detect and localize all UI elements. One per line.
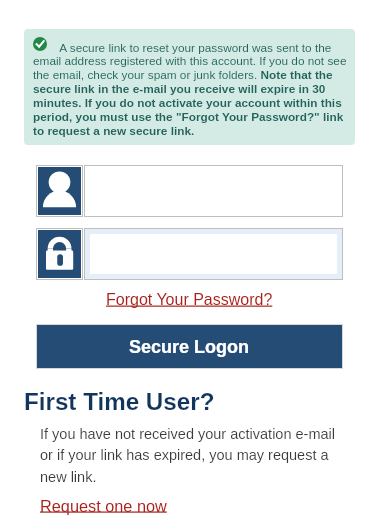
staticText: If you have not received your activation…: [40, 426, 335, 485]
button[interactable]: Forgot Your Password?: [100, 289, 279, 311]
button[interactable]: Request one now: [40, 497, 167, 515]
button[interactable]: Password: [36, 228, 343, 280]
button[interactable]: Username: [36, 165, 343, 217]
staticText: Secure Logon: [129, 337, 250, 357]
staticText: A secure link to reset your password was…: [33, 41, 347, 138]
button[interactable]: Secure Logon: [37, 325, 342, 368]
staticText: First Time User?: [24, 388, 215, 415]
